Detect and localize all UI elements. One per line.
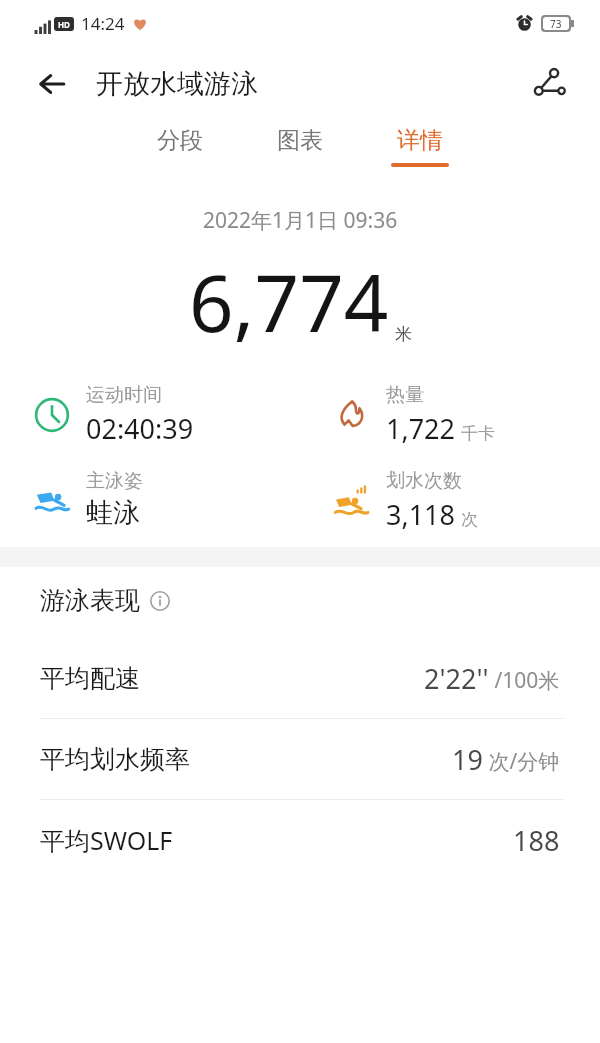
button[interactable]: 平均划水频率: [0, 719, 600, 799]
button[interactable]: 图表: [262, 122, 338, 163]
button[interactable]: 划水次数: [300, 469, 600, 533]
staticText: /100米: [489, 666, 560, 695]
staticText: 主泳姿: [86, 469, 143, 493]
staticText: 次: [461, 509, 478, 530]
button[interactable]: 热量: [300, 383, 600, 447]
staticText: 19: [452, 741, 483, 778]
staticText: 蛙泳: [86, 496, 140, 530]
staticText: 开放水域游泳: [96, 67, 258, 101]
button[interactable]: 游泳表现: [40, 585, 600, 616]
staticText: 图表: [277, 126, 323, 155]
staticText: 3,118: [386, 496, 456, 533]
staticText: 千卡: [461, 423, 495, 444]
staticText: 平均SWOLF: [40, 823, 173, 857]
staticText: 分段: [157, 126, 203, 155]
staticText: 188: [513, 822, 560, 859]
button[interactable]: Back: [30, 62, 74, 106]
button[interactable]: 详情: [382, 122, 458, 167]
staticText: 详情: [397, 126, 443, 155]
button[interactable]: 分段: [142, 122, 218, 163]
staticText: HD: [58, 19, 70, 30]
staticText: 平均配速: [40, 663, 140, 694]
button[interactable]: 主泳姿: [0, 469, 300, 530]
staticText: 次/分钟: [483, 747, 560, 776]
staticText: 2022年1月1日 09:36: [203, 206, 398, 235]
staticText: 73: [550, 17, 562, 30]
staticText: 平均划水频率: [40, 744, 190, 775]
other: Info: [150, 591, 170, 611]
staticText: 6,774: [189, 249, 389, 355]
button[interactable]: Share: [526, 60, 574, 108]
staticText: 米: [395, 324, 412, 345]
staticText: 14:24: [81, 12, 125, 35]
staticText: 1,722: [386, 410, 456, 447]
staticText: 游泳表现: [40, 585, 140, 616]
button[interactable]: 平均配速: [0, 638, 600, 718]
button[interactable]: 运动时间: [0, 383, 300, 447]
staticText: 02:40:39: [86, 410, 194, 447]
staticText: 划水次数: [386, 469, 462, 493]
staticText: 热量: [386, 383, 424, 407]
button[interactable]: 平均SWOLF: [0, 800, 600, 880]
staticText: 2'22'': [424, 660, 489, 697]
staticText: 运动时间: [86, 383, 162, 407]
